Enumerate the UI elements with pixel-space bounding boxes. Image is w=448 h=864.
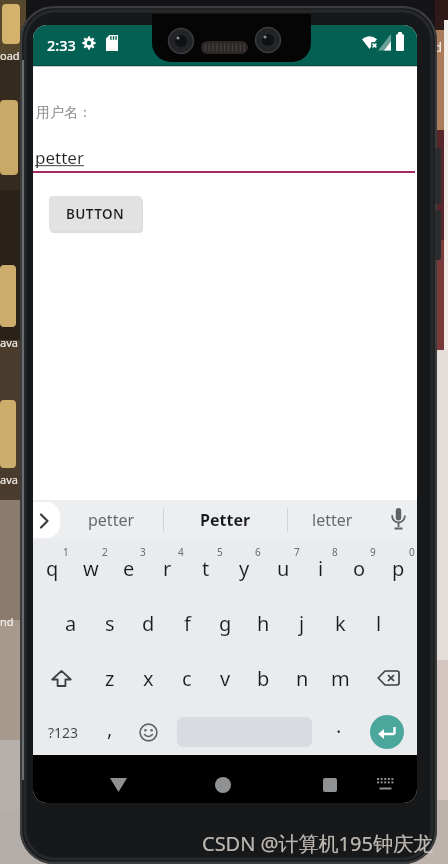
- button[interactable]: letter: [287, 503, 377, 537]
- staticText: s: [105, 610, 115, 637]
- button[interactable]: i: [306, 548, 336, 588]
- staticText: j: [299, 610, 305, 637]
- button[interactable]: a: [56, 603, 86, 643]
- staticText: nd: [0, 614, 14, 629]
- staticText: 0: [409, 545, 415, 559]
- staticText: 2:33: [47, 35, 76, 55]
- button[interactable]: [139, 723, 158, 742]
- staticText: c: [182, 665, 192, 692]
- staticText: 4: [178, 545, 184, 559]
- button[interactable]: g: [210, 603, 240, 643]
- staticText: i: [318, 555, 324, 582]
- staticText: b: [257, 665, 270, 692]
- staticText: z: [105, 665, 115, 692]
- button[interactable]: o: [344, 548, 374, 588]
- button[interactable]: [377, 670, 400, 687]
- staticText: r: [163, 555, 172, 582]
- staticText: petter: [88, 509, 135, 531]
- staticText: BUTTON: [66, 205, 125, 223]
- button[interactable]: c: [172, 658, 202, 698]
- staticText: n: [296, 665, 309, 692]
- staticText: a: [65, 610, 77, 637]
- staticText: p: [392, 555, 405, 582]
- staticText: 9: [370, 545, 376, 559]
- button[interactable]: f: [172, 603, 202, 643]
- button[interactable]: d: [133, 603, 163, 643]
- staticText: 用户名：: [36, 104, 92, 122]
- staticText: q: [46, 555, 59, 582]
- staticText: 3: [140, 545, 146, 559]
- staticText: f: [184, 610, 191, 637]
- button[interactable]: b: [248, 658, 278, 698]
- button[interactable]: x: [133, 658, 163, 698]
- staticText: ,: [107, 715, 113, 742]
- staticText: Petter: [200, 509, 251, 531]
- staticText: d: [142, 610, 155, 637]
- staticText: d: [434, 38, 442, 56]
- button[interactable]: [51, 670, 72, 687]
- button[interactable]: ,: [100, 711, 120, 745]
- staticText: 1: [63, 545, 69, 559]
- staticText: 7: [294, 545, 300, 559]
- button[interactable]: [215, 777, 231, 793]
- button[interactable]: n: [287, 658, 317, 698]
- button[interactable]: [370, 715, 404, 749]
- staticText: y: [239, 555, 250, 582]
- staticText: ava: [0, 472, 18, 487]
- button[interactable]: y: [229, 548, 259, 588]
- staticText: g: [219, 610, 232, 637]
- staticText: e: [123, 555, 135, 582]
- button[interactable]: [390, 508, 407, 532]
- button[interactable]: [110, 778, 127, 792]
- staticText: .: [336, 712, 342, 739]
- button[interactable]: [323, 778, 337, 792]
- button[interactable]: l: [364, 603, 394, 643]
- staticText: CSDN @计算机195钟庆龙: [202, 830, 433, 857]
- staticText: h: [257, 610, 270, 637]
- button[interactable]: [33, 120, 415, 173]
- button[interactable]: t: [191, 548, 221, 588]
- button[interactable]: .: [329, 708, 349, 742]
- staticText: u: [277, 555, 290, 582]
- button[interactable]: j: [287, 603, 317, 643]
- button[interactable]: ?123: [37, 715, 89, 749]
- staticText: l: [376, 610, 382, 637]
- button[interactable]: p: [383, 548, 413, 588]
- staticText: k: [335, 610, 346, 637]
- staticText: ava: [0, 335, 18, 350]
- button[interactable]: BUTTON: [49, 196, 142, 231]
- button[interactable]: [33, 502, 60, 538]
- staticText: m: [331, 665, 350, 692]
- staticText: 5: [217, 545, 223, 559]
- button[interactable]: r: [152, 548, 182, 588]
- button[interactable]: z: [95, 658, 125, 698]
- staticText: letter: [312, 509, 353, 531]
- button[interactable]: m: [325, 658, 355, 698]
- button[interactable]: h: [248, 603, 278, 643]
- staticText: x: [143, 665, 154, 692]
- button[interactable]: s: [95, 603, 125, 643]
- staticText: w: [83, 555, 99, 582]
- staticText: 6: [255, 545, 261, 559]
- staticText: 8: [332, 545, 338, 559]
- staticText: o: [353, 555, 366, 582]
- button[interactable]: w: [76, 548, 106, 588]
- staticText: v: [220, 665, 231, 692]
- staticText: 2: [102, 545, 108, 559]
- staticText: petter: [35, 146, 84, 169]
- button[interactable]: u: [268, 548, 298, 588]
- button[interactable]: v: [210, 658, 240, 698]
- button[interactable]: q: [37, 548, 67, 588]
- button[interactable]: k: [325, 603, 355, 643]
- button[interactable]: [377, 778, 394, 791]
- staticText: ?123: [48, 723, 79, 742]
- staticText: t: [202, 555, 210, 582]
- button[interactable]: petter: [60, 503, 163, 537]
- button[interactable]: Petter: [163, 503, 287, 537]
- staticText: oad: [0, 48, 20, 63]
- button[interactable]: e: [114, 548, 144, 588]
